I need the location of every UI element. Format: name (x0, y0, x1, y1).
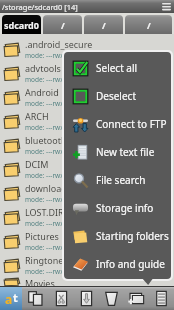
button[interactable]: Pictures (0, 229, 174, 253)
button[interactable]: Copy (22, 287, 48, 310)
button[interactable]: Android (0, 85, 174, 109)
staticText: New text file (96, 145, 155, 159)
button[interactable]: / (43, 15, 82, 34)
button[interactable]: Properties (149, 287, 174, 310)
button[interactable]: Storage info (64, 194, 171, 222)
staticText: Android (25, 86, 59, 98)
staticText: ARCH (25, 110, 49, 122)
staticText: mode: ---rwxr-x (25, 147, 72, 156)
button[interactable]: Starting folders (64, 222, 171, 250)
staticText: mode: ---rwxr-x (25, 99, 72, 108)
staticText: a (5, 291, 13, 307)
button[interactable]: Connect to FTP (64, 110, 171, 138)
button[interactable]: advtools (0, 61, 174, 85)
staticText: mode: ---rwxr-x (25, 51, 72, 60)
staticText: File search (96, 173, 146, 187)
staticText: Deselect (96, 89, 136, 103)
staticText: Info and guide (96, 257, 165, 271)
button[interactable]: sdcard0 (2, 15, 41, 34)
button[interactable]: LOST.DIR (0, 205, 174, 229)
staticText: mode: ---rwxr-x (25, 195, 72, 204)
button[interactable]: New folder (124, 287, 149, 310)
staticText: download (25, 182, 67, 194)
staticText: Pictures (25, 230, 59, 242)
button[interactable]: DCIM (0, 157, 174, 181)
staticText: / (61, 19, 65, 31)
button[interactable]: / (125, 15, 172, 34)
staticText: mode: ---rwxr-x (25, 75, 72, 84)
button[interactable]: Movies (0, 277, 174, 286)
staticText: Storage info (96, 201, 154, 215)
staticText: mode: ---rwxr-x (25, 219, 72, 228)
button[interactable]: New text file (64, 138, 171, 166)
button[interactable]: Info and guide (64, 250, 171, 278)
button[interactable]: / (84, 15, 123, 34)
button[interactable]: Paste (74, 287, 99, 310)
staticText: mode: ---rwxr-x (25, 123, 72, 132)
staticText: t (13, 290, 18, 305)
staticText: bluetooth (25, 134, 67, 146)
button[interactable]: bluetooth (0, 133, 174, 157)
button[interactable]: Ringtones (0, 253, 174, 277)
staticText: mode: ---rwxr-x (25, 243, 72, 252)
button[interactable]: ARCH (0, 109, 174, 133)
button[interactable]: Delete (99, 287, 124, 310)
staticText: / (147, 19, 151, 31)
button[interactable]: App menu (0, 287, 22, 310)
button[interactable]: Deselect (64, 82, 171, 110)
button[interactable]: Menu (160, 1, 172, 13)
staticText: LOST.DIR (25, 206, 64, 218)
staticText: / (102, 19, 106, 31)
staticText: .android_secure (25, 38, 93, 50)
staticText: sdcard0 (4, 19, 39, 31)
staticText: /storage/sdcard0 [14] (2, 2, 78, 12)
button[interactable]: Select all (64, 54, 171, 82)
button[interactable]: download (0, 181, 174, 205)
staticText: Connect to FTP (96, 117, 167, 131)
staticText: Ringtones (25, 254, 68, 266)
staticText: mode: ---rwxr-x (25, 267, 72, 276)
staticText: DCIM (25, 158, 49, 170)
button[interactable]: File search (64, 166, 171, 194)
staticText: advtools (25, 62, 61, 74)
staticText: Select all (96, 61, 138, 75)
button[interactable]: .android_secure (0, 37, 174, 61)
button[interactable]: Cut (48, 287, 74, 310)
staticText: mode: ---rwxr-x (25, 171, 72, 180)
staticText: Starting folders (96, 229, 169, 243)
staticText: Movies (25, 277, 55, 286)
